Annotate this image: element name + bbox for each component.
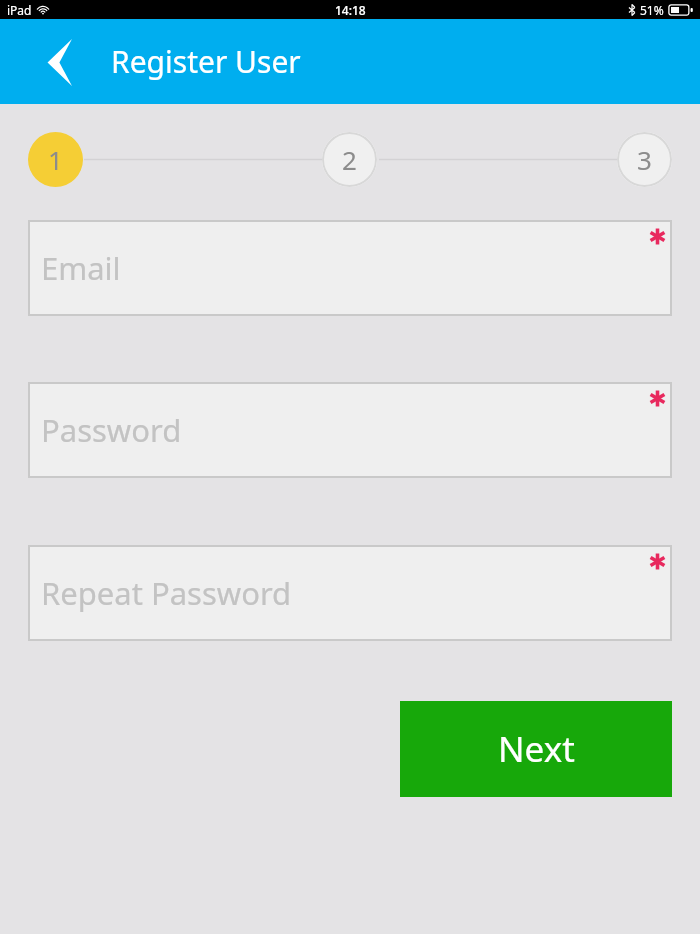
button[interactable]: 1: [28, 132, 83, 187]
staticText: 3: [637, 142, 652, 177]
staticText: 14:18: [335, 2, 366, 18]
staticText: iPad: [7, 2, 32, 18]
staticText: Next: [498, 725, 575, 773]
staticText: 1: [48, 142, 63, 177]
button[interactable]: Back: [24, 29, 86, 95]
button[interactable]: Password: [28, 382, 672, 478]
button[interactable]: 2: [322, 132, 377, 187]
button[interactable]: Next: [400, 701, 672, 797]
staticText: Password: [41, 409, 182, 451]
staticText: Email: [41, 247, 121, 289]
button[interactable]: Repeat Password: [28, 545, 672, 641]
staticText: Register User: [111, 41, 301, 82]
staticText: 2: [342, 142, 357, 177]
button[interactable]: 3: [617, 132, 672, 187]
staticText: 51%: [640, 2, 664, 18]
staticText: Repeat Password: [41, 572, 292, 614]
button[interactable]: Email: [28, 220, 672, 316]
